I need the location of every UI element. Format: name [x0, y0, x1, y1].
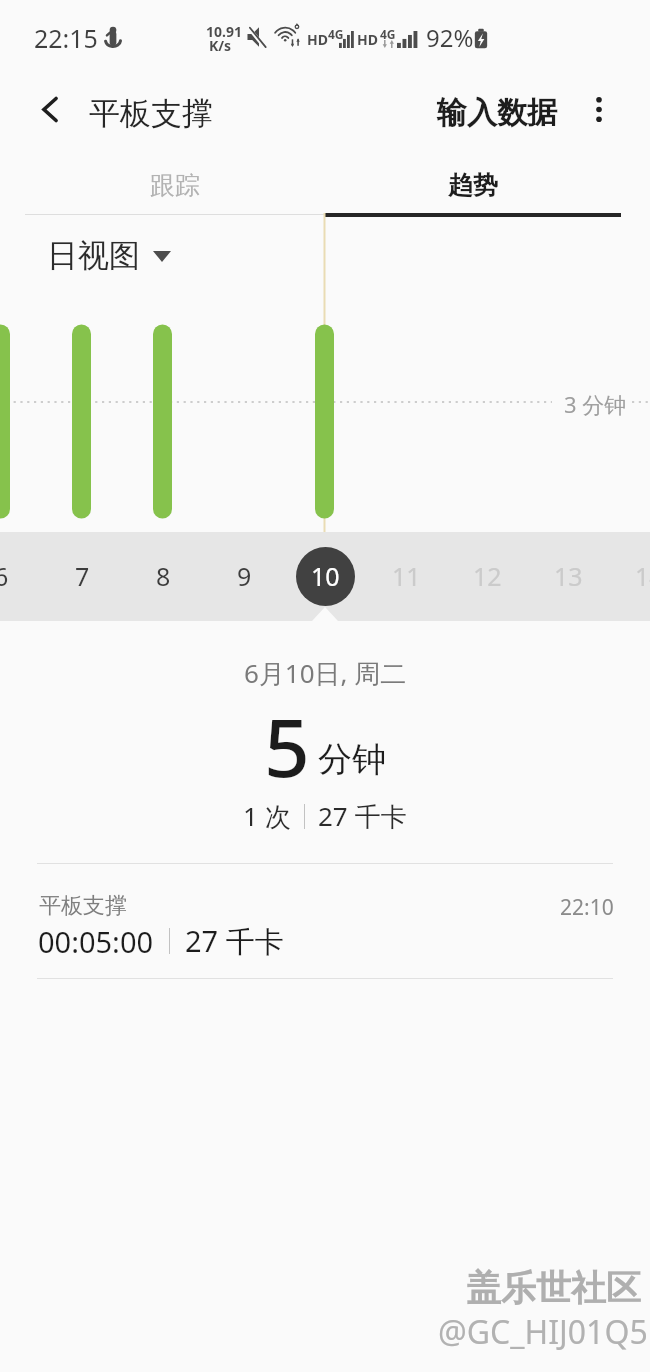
button[interactable]: 10: [295, 546, 355, 606]
staticText: 11: [392, 559, 421, 593]
staticText: 趋势: [448, 170, 498, 201]
button[interactable]: 12: [457, 546, 517, 606]
staticText: 27 千卡: [318, 798, 407, 834]
staticText: 7: [75, 559, 90, 593]
staticText: HD: [307, 30, 328, 49]
button[interactable]: Back: [19, 78, 81, 140]
staticText: HD: [357, 30, 378, 49]
button[interactable]: 跟踪: [25, 157, 325, 214]
staticText: 92%: [426, 21, 474, 54]
staticText: 平板支撑: [89, 94, 213, 133]
button[interactable]: 趋势: [325, 157, 621, 213]
button[interactable]: 6: [0, 546, 31, 606]
staticText: 10.91: [206, 22, 242, 41]
staticText: 27 千卡: [185, 921, 284, 961]
button[interactable]: 7: [52, 546, 112, 606]
staticText: 平板支撑: [39, 892, 127, 920]
staticText: 输入数据: [437, 94, 557, 132]
staticText: @GC_HIJ01Q5: [438, 1310, 648, 1354]
staticText: 日视图: [47, 236, 140, 275]
staticText: 3 分钟: [564, 389, 627, 419]
staticText: 盖乐世社区: [466, 1266, 641, 1310]
staticText: 4G: [328, 26, 344, 42]
staticText: 00:05:00: [38, 922, 154, 961]
staticText: K/s: [209, 36, 232, 55]
button[interactable]: 平板支撑: [0, 864, 650, 982]
button[interactable]: 11: [376, 546, 436, 606]
staticText: 22:15: [34, 21, 98, 55]
staticText: 6: [0, 559, 9, 593]
staticText: 13: [554, 559, 583, 593]
button[interactable]: More options: [573, 83, 625, 135]
staticText: 12: [473, 559, 502, 593]
staticText: 4G: [380, 26, 396, 42]
button[interactable]: 13: [538, 546, 598, 606]
button[interactable]: 9: [214, 546, 274, 606]
staticText: 跟踪: [150, 170, 200, 201]
staticText: 5: [264, 691, 310, 800]
staticText: 22:10: [560, 893, 614, 922]
staticText: 9: [237, 559, 252, 593]
button[interactable]: 输入数据: [429, 87, 565, 139]
staticText: 分钟: [318, 738, 386, 781]
button[interactable]: 14: [619, 546, 650, 606]
staticText: 10: [311, 559, 340, 593]
staticText: 14: [635, 559, 650, 593]
button[interactable]: 8: [133, 546, 193, 606]
staticText: 1 次: [243, 798, 291, 834]
button[interactable]: 日视图: [43, 232, 175, 279]
staticText: 8: [156, 559, 171, 593]
staticText: 6月10日, 周二: [244, 655, 407, 691]
